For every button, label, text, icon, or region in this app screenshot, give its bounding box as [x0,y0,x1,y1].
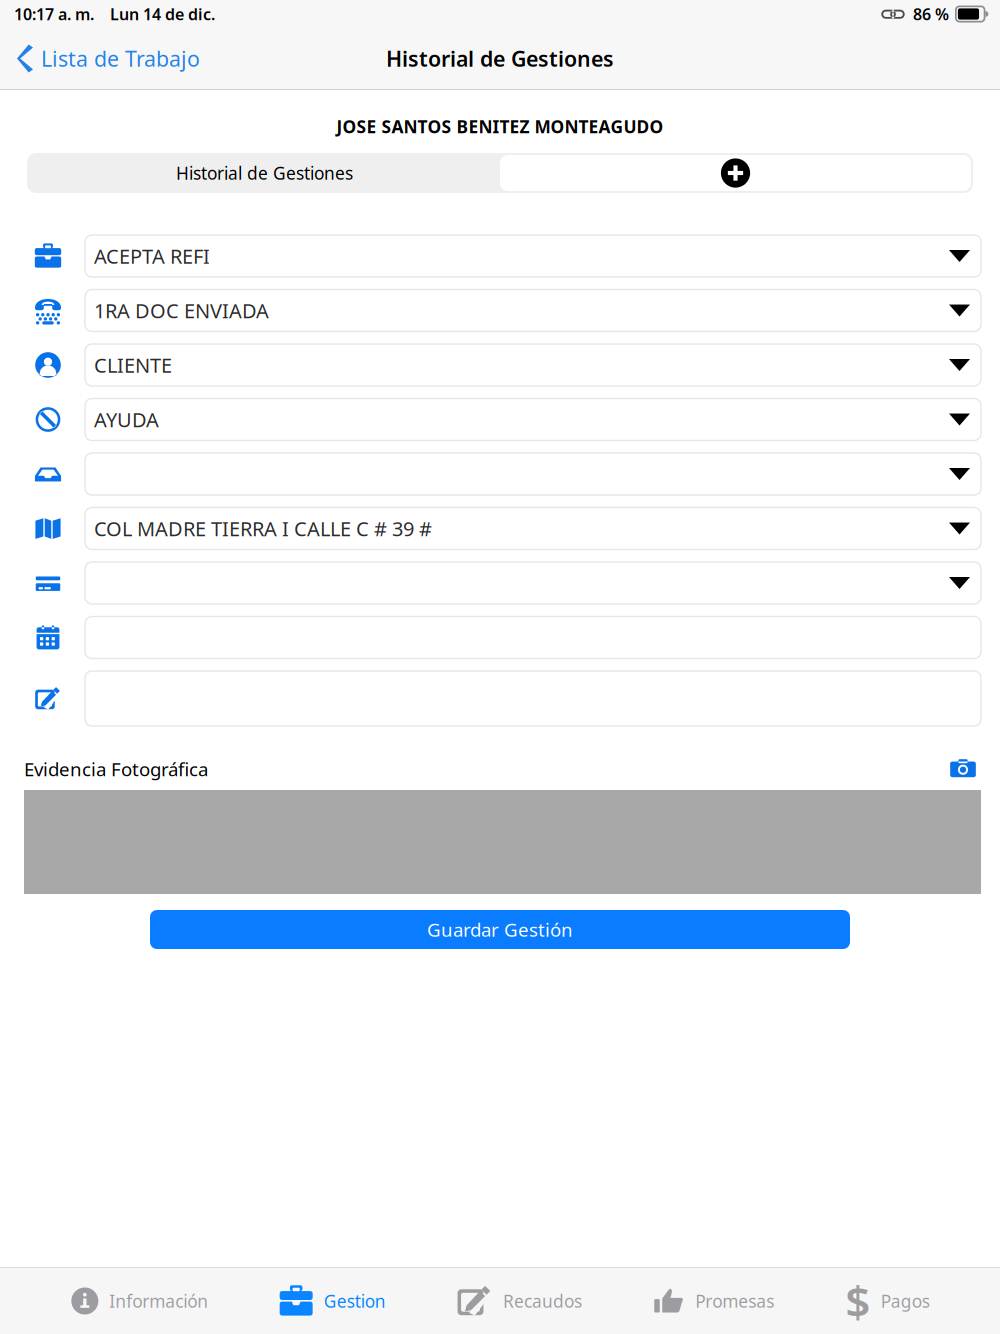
staticText: Promesas [695,1289,774,1312]
button[interactable]: Historial de Gestiones [29,153,500,193]
staticText: COL MADRE TIERRA I CALLE C # 39 # [94,515,432,542]
button[interactable] [85,671,981,726]
button[interactable]: CLIENTE [85,344,981,386]
button[interactable]: Lista de Trabajo [0,33,217,83]
staticText: Historial de Gestiones [176,161,353,184]
button[interactable]: 1RA DOC ENVIADA [85,289,981,331]
button[interactable]: Gestion [279,1271,386,1331]
staticText: Guardar Gestión [427,917,573,942]
button[interactable]: Guardar Gestión [150,910,850,949]
button[interactable] [85,453,981,495]
button[interactable]: AYUDA [85,398,981,440]
button[interactable]: Tomar foto [946,756,980,782]
button[interactable] [85,562,981,604]
button[interactable]: Recaudos [456,1271,582,1331]
staticText: ACEPTA REFI [94,243,210,269]
button[interactable] [85,616,981,658]
staticText: Pagos [881,1289,930,1312]
staticText: Evidencia Fotográfica [24,757,208,781]
staticText: Recaudos [503,1289,582,1312]
staticText: Información [109,1289,208,1312]
button[interactable]: ACEPTA REFI [85,235,981,277]
staticText: Lista de Trabajo [41,44,200,73]
staticText: Lun 14 de dic. [110,3,215,25]
button[interactable]: Promesas [652,1271,774,1331]
staticText: Gestion [324,1289,386,1312]
staticText: AYUDA [94,406,159,433]
button[interactable]: Agregar gestión [500,155,971,191]
staticText: 1RA DOC ENVIADA [94,297,269,324]
button[interactable]: Información [70,1271,208,1331]
staticText: CLIENTE [94,352,172,378]
staticText: $ [845,1272,870,1330]
staticText: 86 % [913,3,949,25]
staticText: JOSE SANTOS BENITEZ MONTEAGUDO [336,115,663,138]
button[interactable]: COL MADRE TIERRA I CALLE C # 39 # [85,507,981,549]
staticText: 10:17 a. m. [14,3,94,25]
button[interactable]: $ [845,1271,930,1331]
staticText: Historial de Gestiones [386,44,614,73]
